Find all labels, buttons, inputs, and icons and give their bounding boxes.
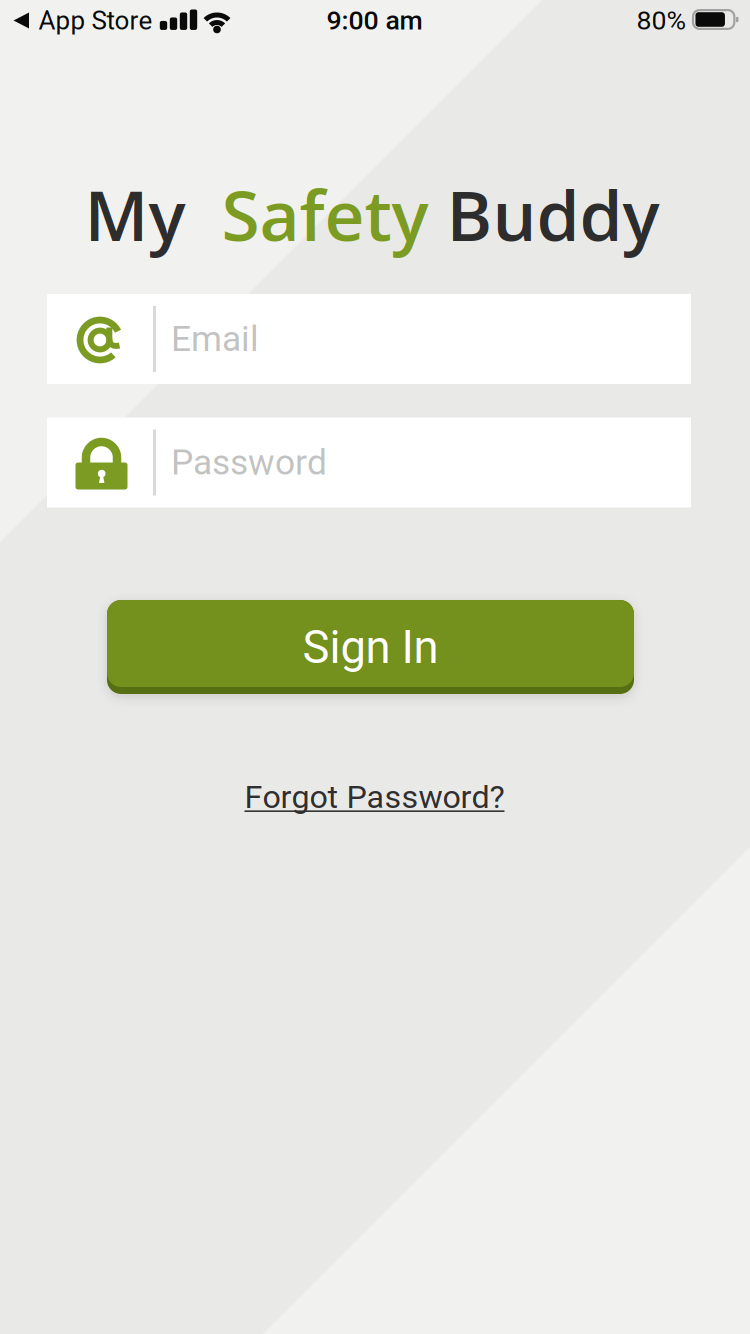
staticText: App Store (38, 5, 152, 36)
staticText: Forgot Password? (244, 778, 504, 816)
staticText: Password (171, 442, 327, 483)
button[interactable]: Sign In (107, 600, 634, 694)
staticText: 9:00 am (326, 5, 422, 36)
staticText: Email (171, 318, 259, 360)
button[interactable]: Forgot Password? (244, 778, 504, 816)
button[interactable]: Password (47, 417, 691, 507)
staticText: Safety (221, 167, 446, 261)
button[interactable]: Email (47, 294, 691, 384)
staticText: 80% (636, 5, 686, 36)
staticText: Buddy (446, 167, 659, 261)
button[interactable]: Back to App Store (13, 5, 152, 36)
staticText: My (84, 167, 203, 261)
staticText: Sign In (302, 621, 438, 674)
